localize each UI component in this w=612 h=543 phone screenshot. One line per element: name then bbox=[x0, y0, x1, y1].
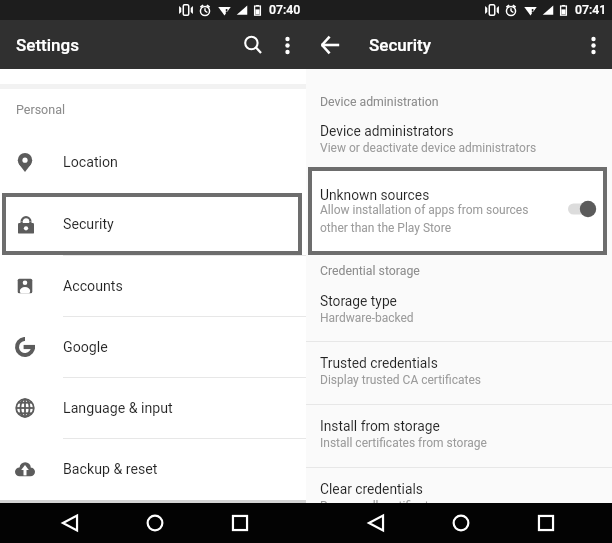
staticText: Security bbox=[63, 216, 114, 233]
staticText: View or deactivate device administrators bbox=[320, 141, 537, 155]
staticText: Device administrators bbox=[320, 123, 454, 139]
staticText: Google bbox=[63, 339, 108, 356]
button[interactable]: Accounts bbox=[0, 256, 306, 316]
button[interactable]: Back bbox=[50, 503, 90, 543]
staticText: Display trusted CA certificates bbox=[320, 373, 481, 387]
button[interactable]: Backup & reset bbox=[0, 439, 306, 499]
staticText: Accounts bbox=[63, 278, 123, 295]
staticText: Personal bbox=[16, 102, 65, 117]
staticText: Install from storage bbox=[320, 418, 440, 434]
button[interactable]: Home bbox=[135, 503, 175, 543]
staticText: Hardware-backed bbox=[320, 311, 414, 325]
button[interactable]: Device administrators bbox=[306, 123, 612, 155]
button[interactable]: More options bbox=[574, 26, 612, 64]
button[interactable]: Back bbox=[356, 503, 396, 543]
staticText: Location bbox=[63, 154, 118, 171]
button[interactable]: Unknown sources bbox=[308, 167, 607, 255]
staticText: Allow installation of apps from sources … bbox=[320, 203, 529, 235]
button[interactable]: Google bbox=[0, 317, 306, 377]
button[interactable]: Search bbox=[228, 25, 268, 65]
button[interactable]: Storage type bbox=[306, 293, 612, 325]
staticText: Unknown sources bbox=[320, 187, 430, 203]
staticText: Clear credentials bbox=[320, 481, 423, 497]
staticText: 07:41 bbox=[575, 3, 607, 17]
button[interactable]: Recents bbox=[526, 503, 566, 543]
button[interactable]: Location bbox=[0, 132, 306, 193]
staticText: Credential storage bbox=[320, 264, 420, 278]
button[interactable]: Home bbox=[441, 503, 481, 543]
staticText: 07:40 bbox=[269, 3, 301, 17]
button[interactable]: Unknown sources toggle bbox=[568, 200, 596, 218]
button[interactable]: Clear credentials bbox=[306, 481, 612, 513]
staticText: Remove all certificates bbox=[320, 499, 442, 513]
staticText: Language & input bbox=[63, 400, 173, 417]
staticText: Device administration bbox=[320, 95, 439, 109]
button[interactable]: Trusted credentials bbox=[306, 355, 612, 387]
button[interactable]: Install from storage bbox=[306, 418, 612, 450]
staticText: Storage type bbox=[320, 293, 397, 309]
button[interactable]: Recents bbox=[220, 503, 260, 543]
button[interactable]: Security bbox=[2, 193, 302, 255]
staticText: Backup & reset bbox=[63, 461, 158, 478]
staticText: Trusted credentials bbox=[320, 355, 438, 371]
staticText: Settings bbox=[16, 35, 79, 55]
staticText: Security bbox=[369, 35, 432, 55]
staticText: Install certificates from storage bbox=[320, 436, 487, 450]
button[interactable]: Language & input bbox=[0, 378, 306, 438]
button[interactable]: More options bbox=[268, 26, 306, 64]
button[interactable]: Back bbox=[310, 25, 350, 65]
